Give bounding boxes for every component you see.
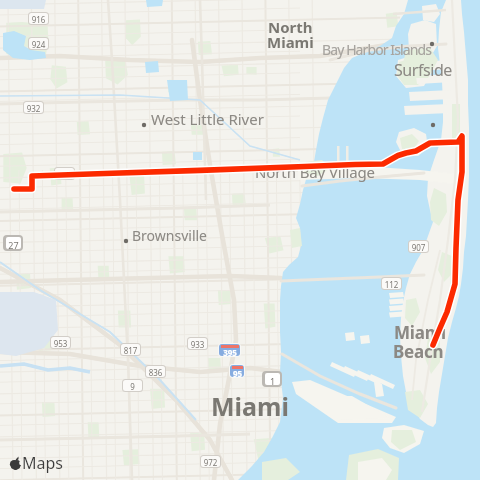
button[interactable]: US route 1 (262, 371, 282, 387)
button[interactable]: State road 817 (120, 343, 141, 356)
button[interactable]: Brownsville (132, 226, 207, 245)
button[interactable]: Map of Miami with highlighted route (0, 0, 480, 480)
staticText: 826 (55, 169, 74, 180)
staticText: 907 (409, 242, 428, 253)
button[interactable]: State road 953 (50, 336, 71, 349)
button[interactable]: West Little River (151, 109, 264, 129)
staticText: 972 (201, 457, 220, 468)
staticText: 395 (221, 347, 239, 358)
button[interactable]: State road 933 (187, 337, 208, 350)
button[interactable]: State road 932 (23, 101, 44, 114)
button[interactable]: State road 972 (200, 455, 221, 468)
button[interactable]: Interstate 95 (229, 364, 245, 378)
staticText: 27 (6, 239, 21, 251)
button[interactable]: Maps (22, 452, 63, 474)
button[interactable]: State road 924 (28, 37, 49, 50)
staticText: 836 (146, 367, 165, 378)
button[interactable]: North Bay Village (255, 162, 375, 182)
button[interactable]: State road 916 (28, 12, 49, 25)
button[interactable]: Apple Maps (8, 453, 68, 475)
staticText: 933 (188, 339, 207, 350)
staticText: 916 (29, 14, 48, 25)
button[interactable]: Miami (211, 389, 289, 423)
staticText: 924 (29, 39, 48, 50)
button[interactable]: Miami (394, 321, 446, 344)
button[interactable]: Miami (267, 32, 314, 52)
button[interactable]: Bay Harbor Islands (322, 40, 431, 59)
staticText: 932 (24, 103, 43, 114)
button[interactable]: US route 27 (3, 235, 23, 251)
staticText: 953 (51, 338, 70, 349)
button[interactable]: State road 836 (145, 365, 166, 378)
staticText: 95 (232, 368, 243, 379)
staticText: 112 (382, 279, 401, 290)
staticText: 817 (121, 345, 140, 356)
button[interactable]: Surfside (394, 59, 452, 81)
button[interactable]: State road 907 (408, 240, 429, 253)
button[interactable]: State road 9 (122, 379, 143, 392)
staticText: 1 (265, 375, 280, 387)
button[interactable]: Beach (393, 340, 444, 363)
button[interactable]: North (268, 17, 313, 37)
button[interactable]: State road 112 (381, 277, 402, 290)
button[interactable]: Interstate 395 (218, 343, 241, 357)
staticText: 9 (123, 381, 142, 392)
button[interactable]: State road 826 (54, 167, 75, 180)
